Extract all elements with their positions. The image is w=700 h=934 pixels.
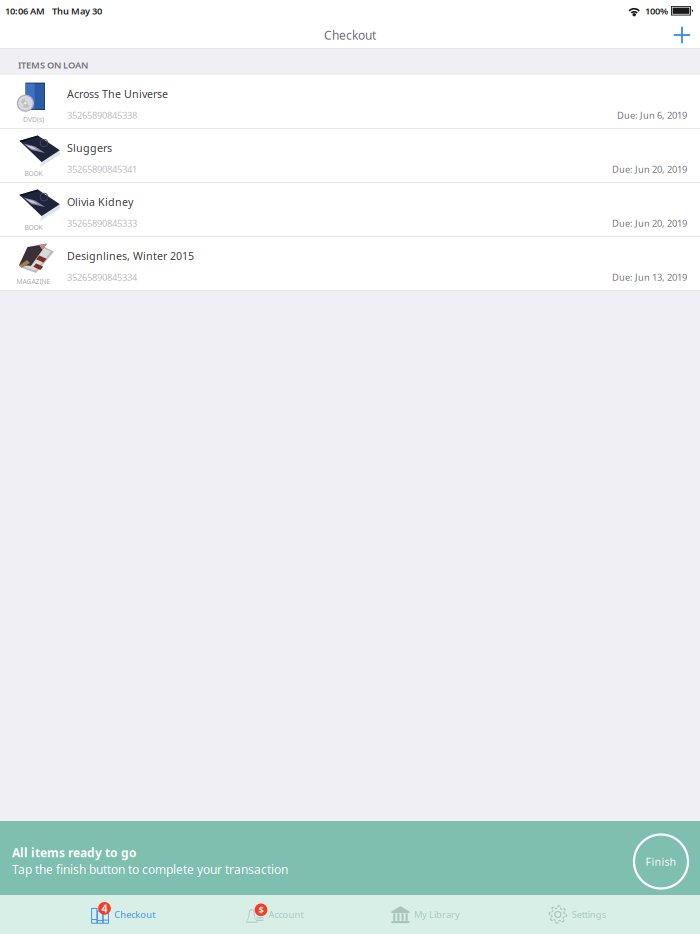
staticText: 100% [645, 5, 668, 17]
staticText: Due: Jun 20, 2019 [612, 163, 687, 175]
staticText: 35265890845333 [67, 217, 137, 229]
staticText: 4 [101, 901, 107, 915]
staticText: 35265890845334 [67, 271, 137, 283]
button[interactable]: $ [199, 895, 350, 934]
button[interactable]: MAGAZINE [0, 237, 700, 291]
button[interactable]: Add item [664, 22, 700, 48]
staticText: My Library [414, 908, 460, 921]
staticText: ITEMS ON LOAN [18, 59, 88, 71]
staticText: 35265890845338 [67, 109, 137, 121]
staticText: 35265890845341 [67, 163, 137, 175]
staticText: Account [269, 908, 304, 921]
button[interactable]: Settings [501, 895, 653, 934]
staticText: $ [258, 904, 263, 916]
button[interactable]: BOOK [0, 183, 700, 237]
staticText: Sluggers [67, 141, 112, 155]
staticText: DVD(s) [23, 115, 44, 124]
staticText: Due: Jun 6, 2019 [617, 109, 687, 121]
staticText: BOOK [24, 169, 42, 178]
staticText: All items ready to go [12, 845, 137, 860]
staticText: Due: Jun 20, 2019 [612, 217, 687, 229]
button[interactable]: BOOK [0, 129, 700, 183]
button[interactable]: 4 [47, 895, 199, 934]
staticText: Settings [572, 908, 606, 921]
staticText: Thu May 30 [52, 5, 102, 17]
staticText: Designlines, Winter 2015 [67, 249, 194, 263]
staticText: MAGAZINE [16, 277, 50, 286]
staticText: Finish [645, 854, 676, 869]
button[interactable]: Finish [630, 830, 692, 892]
staticText: Due: Jun 13, 2019 [612, 271, 687, 283]
staticText: Checkout [114, 908, 155, 921]
staticText: Checkout [324, 27, 376, 43]
staticText: BOOK [24, 223, 42, 232]
staticText: 10:06 AM [5, 5, 45, 17]
button[interactable]: DVD(s) [0, 75, 700, 129]
staticText: Olivia Kidney [67, 195, 133, 209]
staticText: Across The Universe [67, 87, 168, 101]
button[interactable]: My Library [350, 895, 501, 934]
staticText: Tap the finish button to complete your t… [12, 861, 288, 877]
